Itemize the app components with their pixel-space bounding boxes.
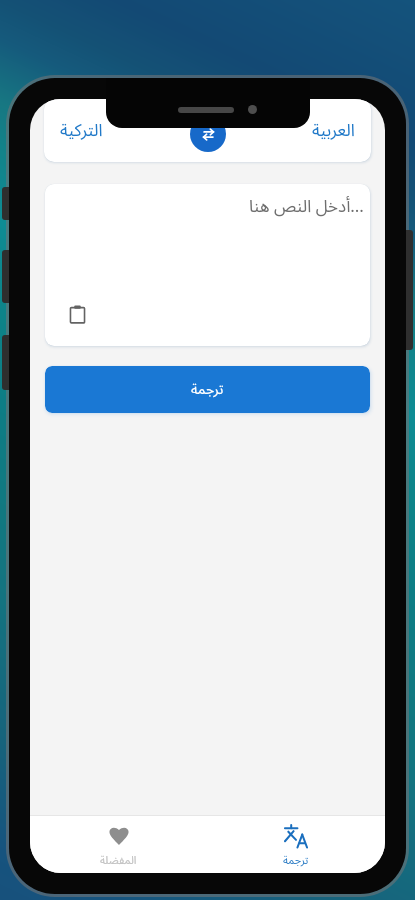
staticText: التركية <box>60 113 103 149</box>
button[interactable]: العربية <box>229 99 355 162</box>
staticText: أدخل النص هنا... <box>249 189 364 225</box>
button[interactable]: Paste from clipboard <box>66 303 88 325</box>
staticText: ترجمة <box>283 849 309 872</box>
button[interactable]: Swap languages <box>190 116 226 152</box>
button[interactable]: ترجمة <box>207 817 385 872</box>
button[interactable]: المفضلة <box>30 817 207 872</box>
button[interactable]: التركية <box>60 99 185 162</box>
staticText: العربية <box>312 113 355 149</box>
staticText: ترجمة <box>191 375 224 405</box>
staticText: المفضلة <box>100 849 137 872</box>
button[interactable]: ترجمة <box>45 366 370 413</box>
